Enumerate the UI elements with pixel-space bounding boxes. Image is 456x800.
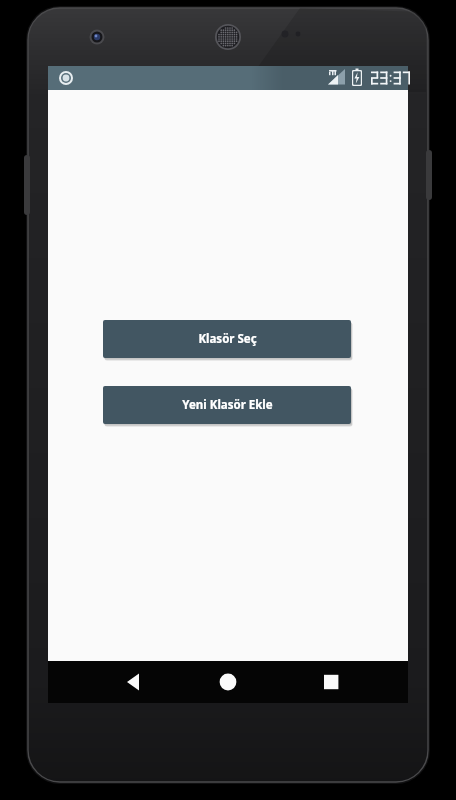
button[interactable]: Back bbox=[110, 663, 158, 701]
staticText: Yeni Klasör Ekle bbox=[182, 397, 273, 413]
button[interactable]: Recent apps bbox=[307, 663, 355, 701]
button[interactable]: Yeni Klasör Ekle bbox=[103, 386, 351, 424]
staticText: Klasör Seç bbox=[198, 331, 257, 347]
button[interactable]: Home bbox=[204, 663, 252, 701]
button[interactable]: Klasör Seç bbox=[103, 320, 351, 358]
